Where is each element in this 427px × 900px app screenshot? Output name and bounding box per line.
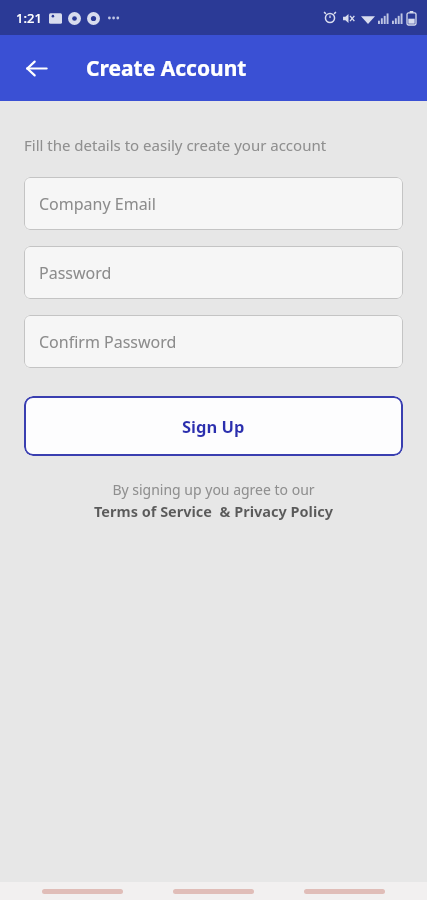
button[interactable]: Back bbox=[12, 44, 60, 92]
staticText: 1:21 bbox=[16, 9, 42, 27]
staticText: Fill the details to easily create your a… bbox=[24, 135, 327, 155]
button[interactable]: Terms of Service & Privacy Policy bbox=[94, 501, 333, 521]
button[interactable]: Password bbox=[24, 246, 403, 299]
button[interactable]: Navigation bbox=[42, 889, 123, 894]
staticText: Password bbox=[39, 262, 112, 284]
staticText: Confirm Password bbox=[39, 331, 177, 353]
staticText: Sign Up bbox=[182, 415, 245, 437]
staticText: Create Account bbox=[86, 54, 247, 83]
button[interactable]: Sign Up bbox=[24, 396, 403, 456]
staticText: Company Email bbox=[39, 193, 156, 215]
button[interactable]: Confirm Password bbox=[24, 315, 403, 368]
button[interactable]: Navigation bbox=[304, 889, 385, 894]
button[interactable]: Navigation bbox=[173, 889, 254, 894]
staticText: By signing up you agree to our bbox=[112, 480, 315, 499]
button[interactable]: Company Email bbox=[24, 177, 403, 230]
